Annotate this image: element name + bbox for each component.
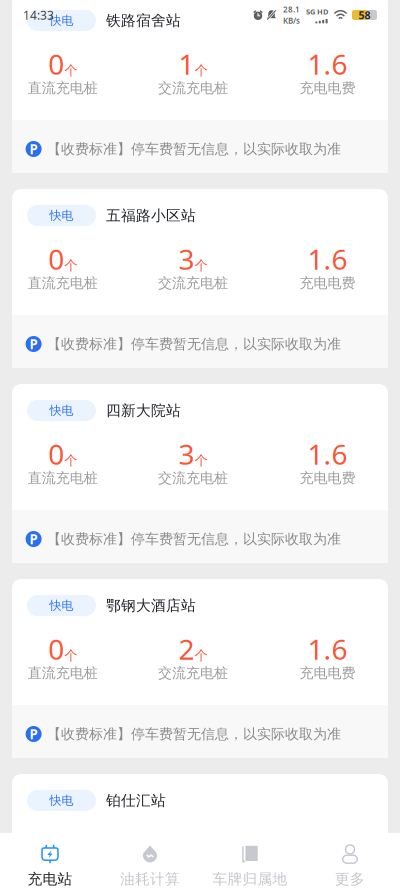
staticText: 鄂钢大酒店站 bbox=[106, 596, 196, 615]
staticText: 车牌归属地 bbox=[212, 870, 287, 888]
staticText: 14:33 bbox=[23, 7, 54, 23]
staticText: 快电 bbox=[49, 208, 73, 223]
staticText: 1.6 bbox=[307, 45, 347, 83]
staticText: 四新大院站 bbox=[106, 401, 181, 420]
staticText: 个 bbox=[64, 647, 77, 664]
staticText: 个 bbox=[194, 257, 207, 274]
staticText: 充电电费 bbox=[299, 859, 355, 877]
staticText: 1.6 bbox=[307, 240, 347, 278]
button[interactable]: 车牌归属地 bbox=[200, 833, 300, 889]
staticText: 快电 bbox=[49, 793, 73, 808]
staticText: 油耗计算 bbox=[120, 870, 180, 888]
button[interactable]: 快电 bbox=[12, 579, 388, 758]
staticText: 28.1 bbox=[283, 4, 300, 15]
staticText: 0 bbox=[48, 240, 64, 278]
staticText: 充电电费 bbox=[299, 274, 355, 292]
staticText: 1.6 bbox=[307, 630, 347, 668]
staticText: 直流充电桩 bbox=[28, 79, 98, 97]
staticText: 【收费标准】停车费暂无信息，以实际收取为准 bbox=[47, 725, 341, 743]
staticText: 0 bbox=[48, 630, 64, 668]
staticText: 充电电费 bbox=[299, 664, 355, 682]
staticText: 直流充电桩 bbox=[28, 469, 98, 487]
staticText: 充电站 bbox=[27, 870, 72, 888]
staticText: P bbox=[30, 335, 38, 353]
button[interactable]: 快电 bbox=[12, 384, 388, 563]
staticText: 铁路宿舍站 bbox=[106, 11, 181, 30]
button[interactable]: 快电 bbox=[12, 189, 388, 368]
staticText: 直流充电桩 bbox=[28, 274, 98, 292]
staticText: 个 bbox=[194, 452, 207, 469]
staticText: 1 bbox=[178, 45, 194, 83]
staticText: 5G HD bbox=[306, 7, 328, 17]
staticText: 更多 bbox=[335, 870, 365, 888]
staticText: 个 bbox=[194, 647, 207, 664]
staticText: 个 bbox=[64, 257, 77, 274]
staticText: P bbox=[30, 140, 38, 158]
staticText: 交流充电桩 bbox=[158, 79, 228, 97]
staticText: KB/s bbox=[283, 15, 300, 26]
staticText: 交流充电桩 bbox=[158, 859, 228, 877]
staticText: 充电电费 bbox=[299, 469, 355, 487]
staticText: 【收费标准】停车费暂无信息，以实际收取为准 bbox=[47, 530, 341, 548]
staticText: 0 bbox=[48, 825, 64, 863]
staticText: 1.6 bbox=[307, 435, 347, 473]
staticText: 快电 bbox=[49, 598, 73, 613]
staticText: 充电电费 bbox=[299, 79, 355, 97]
button[interactable]: 油耗计算 bbox=[100, 833, 200, 889]
staticText: 交流充电桩 bbox=[158, 664, 228, 682]
staticText: 0 bbox=[48, 45, 64, 83]
staticText: 直流充电桩 bbox=[28, 859, 98, 877]
staticText: 交流充电桩 bbox=[158, 274, 228, 292]
staticText: 1.6 bbox=[307, 825, 347, 863]
button[interactable]: 快电 bbox=[12, 774, 388, 889]
button[interactable]: 快电 bbox=[12, 0, 388, 173]
staticText: 铂仕汇站 bbox=[106, 791, 166, 810]
staticText: 快电 bbox=[49, 13, 73, 28]
staticText: 【收费标准】停车费暂无信息，以实际收取为准 bbox=[47, 140, 341, 158]
staticText: 3 bbox=[178, 435, 194, 473]
staticText: 【收费标准】停车费暂无信息，以实际收取为准 bbox=[47, 335, 341, 353]
staticText: 直流充电桩 bbox=[28, 664, 98, 682]
staticText: 0 bbox=[48, 435, 64, 473]
staticText: 2 bbox=[178, 630, 194, 668]
staticText: P bbox=[30, 725, 38, 743]
staticText: 58 bbox=[358, 8, 370, 22]
staticText: P bbox=[30, 530, 38, 548]
staticText: 五福路小区站 bbox=[106, 206, 196, 225]
button[interactable]: 充电站 bbox=[0, 833, 100, 889]
staticText: 3 bbox=[178, 240, 194, 278]
staticText: 交流充电桩 bbox=[158, 469, 228, 487]
staticText: 个 bbox=[64, 452, 77, 469]
button[interactable]: 更多 bbox=[300, 833, 400, 889]
staticText: 个 bbox=[64, 62, 77, 79]
staticText: 个 bbox=[194, 62, 207, 79]
staticText: 快电 bbox=[49, 403, 73, 418]
